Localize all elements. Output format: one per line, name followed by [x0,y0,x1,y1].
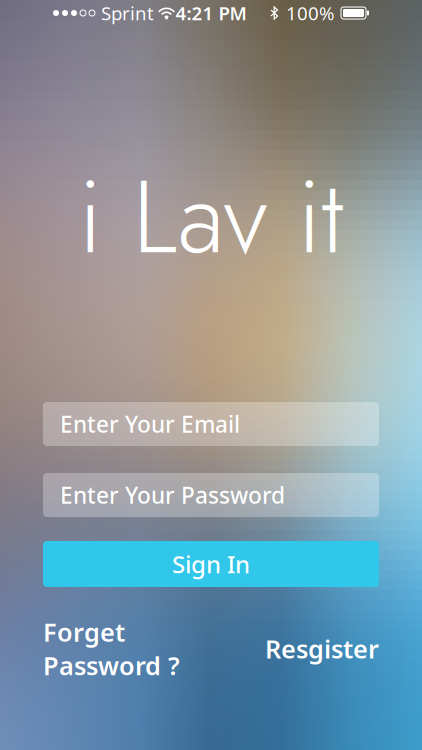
staticText: Enter Your Password [60,480,285,510]
button[interactable]: Enter Your Password [43,473,379,517]
staticText: i Lav it [78,144,343,290]
staticText: Sign In [172,548,250,580]
staticText: 4:21 PM [175,1,246,25]
staticText: Resgister [265,632,379,665]
button[interactable]: Resgister [265,632,379,665]
button[interactable]: Enter Your Email [43,402,379,446]
button[interactable]: Sign In [43,541,379,587]
button[interactable]: Forget Password ? [43,615,180,682]
staticText: Enter Your Email [60,409,240,439]
staticText: Sprint [101,1,154,25]
staticText: Forget Password ? [43,615,180,682]
staticText: 100% [286,1,335,25]
